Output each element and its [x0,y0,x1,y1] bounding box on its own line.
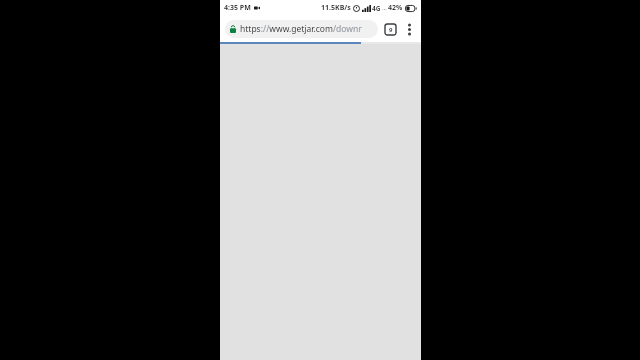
staticText: 4G [372,4,381,13]
staticText: … [382,4,387,12]
button[interactable]: https://www.getjar.com/downr [225,20,378,38]
staticText: 42% [388,3,403,13]
staticText: 4:35 PM [224,3,251,13]
staticText: 9 [389,26,393,34]
button[interactable]: Tabs [383,22,398,37]
staticText: https://www.getjar.com/downr [240,23,362,35]
staticText: 11.5KB/s [321,3,351,13]
button[interactable]: More options [402,22,417,37]
